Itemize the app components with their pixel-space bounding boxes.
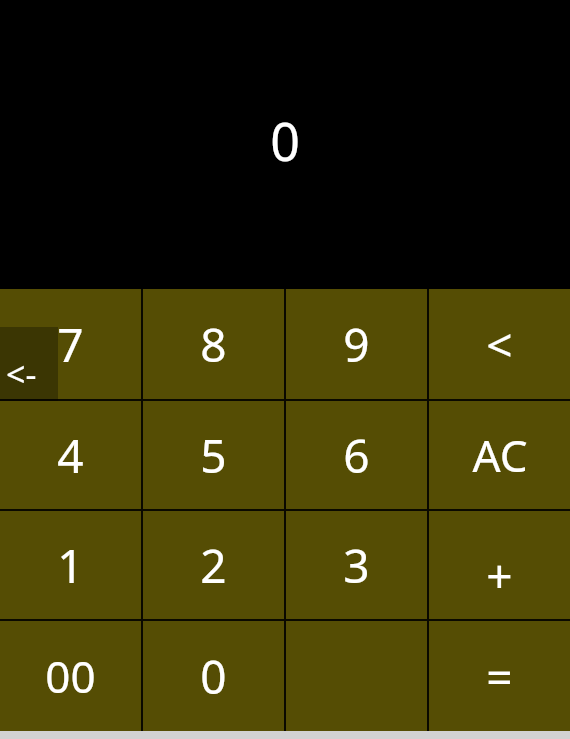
staticText: 00 — [45, 646, 96, 706]
staticText: = — [486, 645, 513, 708]
button[interactable]: < — [429, 289, 570, 399]
button[interactable]: 0 — [143, 621, 284, 731]
button[interactable]: 5 — [143, 401, 284, 509]
button[interactable]: 00 — [0, 621, 141, 731]
staticText: 9 — [343, 313, 370, 376]
staticText: 8 — [200, 313, 227, 376]
staticText: 0 — [270, 105, 300, 176]
button[interactable]: Backspace hint — [0, 327, 58, 401]
staticText: 4 — [57, 424, 84, 487]
staticText: 0 — [200, 645, 227, 708]
button[interactable]: 6 — [286, 401, 427, 509]
button[interactable]: 8 — [143, 289, 284, 399]
staticText: 5 — [200, 424, 227, 487]
staticText: AC — [472, 425, 528, 485]
button[interactable]: AC — [429, 401, 570, 509]
staticText: 1 — [57, 534, 84, 597]
button[interactable]: 9 — [286, 289, 427, 399]
button[interactable]: 1 — [0, 511, 141, 619]
staticText: + — [486, 544, 513, 607]
button[interactable]: 3 — [286, 511, 427, 619]
button[interactable]: 7 — [0, 289, 141, 399]
staticText: 7 — [57, 313, 84, 376]
button[interactable]: + — [429, 511, 570, 619]
button[interactable]: 2 — [143, 511, 284, 619]
staticText: 6 — [343, 424, 370, 487]
button[interactable]: = — [429, 621, 570, 731]
staticText: 2 — [200, 534, 227, 597]
staticText: <- — [6, 351, 37, 397]
button[interactable]: 4 — [0, 401, 141, 509]
staticText: < — [486, 313, 513, 376]
staticText: 3 — [343, 534, 370, 597]
